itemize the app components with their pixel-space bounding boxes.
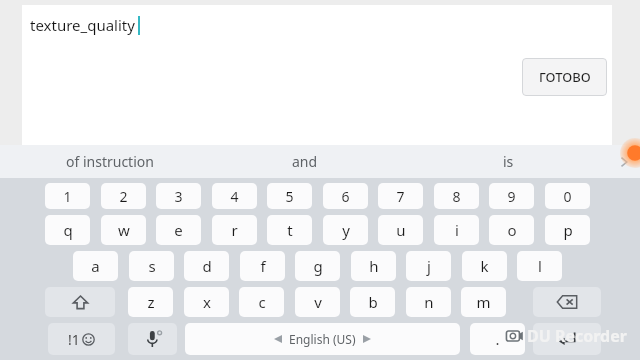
staticText: w (118, 220, 130, 240)
button[interactable]: c (239, 287, 284, 317)
button[interactable]: 1 (45, 183, 90, 209)
button[interactable]: Symbols (48, 323, 115, 355)
button[interactable]: j (406, 251, 451, 281)
staticText: 1 (63, 187, 72, 206)
button[interactable]: 7 (378, 183, 423, 209)
button[interactable]: r (212, 215, 257, 245)
button[interactable]: o (489, 215, 534, 245)
staticText: of instruction (66, 152, 154, 171)
staticText: r (231, 220, 238, 240)
staticText: 7 (396, 187, 405, 206)
staticText: v (314, 292, 322, 312)
button[interactable]: y (323, 215, 368, 245)
staticText: n (424, 292, 434, 312)
button[interactable]: is (418, 145, 598, 178)
staticText: p (563, 220, 573, 240)
staticText: 8 (452, 187, 461, 206)
staticText: ГОТОВО (539, 68, 591, 86)
staticText: q (63, 220, 73, 240)
button[interactable]: n (406, 287, 451, 317)
button[interactable]: Shift (45, 287, 115, 317)
button[interactable]: . (470, 323, 525, 355)
button[interactable]: 2 (101, 183, 146, 209)
button[interactable]: of instruction (20, 145, 200, 178)
button[interactable]: z (128, 287, 173, 317)
staticText: English (US) (289, 331, 356, 347)
staticText: x (203, 292, 211, 312)
staticText: a (91, 256, 100, 276)
button[interactable]: x (184, 287, 229, 317)
staticText: k (480, 256, 489, 276)
button[interactable]: q (45, 215, 90, 245)
staticText: . (495, 329, 500, 349)
staticText: d (202, 256, 212, 276)
button[interactable]: texture_quality (22, 5, 612, 145)
staticText: e (174, 220, 183, 240)
button[interactable]: ГОТОВО (522, 58, 607, 96)
button[interactable]: 9 (489, 183, 534, 209)
staticText: m (476, 292, 491, 312)
button[interactable]: k (462, 251, 507, 281)
button[interactable]: m (461, 287, 506, 317)
staticText: 0 (563, 187, 572, 206)
button[interactable]: 5 (267, 183, 312, 209)
staticText: 5 (285, 187, 294, 206)
button[interactable]: 0 (545, 183, 590, 209)
button[interactable]: i (434, 215, 479, 245)
staticText: texture_quality (30, 15, 135, 35)
button[interactable]: f (240, 251, 285, 281)
button[interactable]: u (378, 215, 423, 245)
button[interactable]: p (545, 215, 590, 245)
staticText: and (292, 152, 318, 171)
staticText: is (503, 152, 514, 171)
staticText: t (287, 220, 293, 240)
button[interactable]: Voice input (128, 323, 177, 355)
staticText: c (258, 292, 266, 312)
staticText: b (368, 292, 378, 312)
button[interactable]: 8 (434, 183, 479, 209)
button[interactable]: Backspace (533, 287, 601, 317)
button[interactable]: and (215, 145, 395, 178)
staticText: 3 (174, 187, 183, 206)
staticText: DU Recorder (527, 325, 627, 347)
staticText: o (507, 220, 517, 240)
button[interactable]: h (351, 251, 396, 281)
button[interactable]: s (129, 251, 174, 281)
button[interactable]: a (73, 251, 118, 281)
staticText: 4 (230, 187, 239, 206)
button[interactable]: v (295, 287, 340, 317)
button[interactable]: t (267, 215, 312, 245)
button[interactable]: b (350, 287, 395, 317)
staticText: l (538, 256, 542, 276)
staticText: 6 (341, 187, 350, 206)
staticText: h (369, 256, 379, 276)
button[interactable]: 4 (212, 183, 257, 209)
button[interactable]: d (184, 251, 229, 281)
button[interactable]: g (295, 251, 340, 281)
button[interactable]: More suggestions (608, 146, 640, 178)
staticText: i (455, 220, 459, 240)
button[interactable]: Enter (533, 323, 601, 355)
button[interactable]: Recorder (620, 138, 640, 168)
button[interactable]: 3 (156, 183, 201, 209)
staticText: g (313, 256, 323, 276)
staticText: 2 (119, 187, 128, 206)
button[interactable]: l (517, 251, 562, 281)
staticText: 9 (507, 187, 516, 206)
staticText: u (396, 220, 406, 240)
staticText: f (260, 256, 266, 276)
staticText: j (427, 256, 431, 276)
button[interactable]: w (101, 215, 146, 245)
button[interactable]: e (156, 215, 201, 245)
staticText: y (342, 220, 350, 240)
staticText: z (147, 292, 155, 312)
button[interactable]: English (US) (185, 323, 460, 355)
button[interactable]: 6 (323, 183, 368, 209)
staticText: s (148, 256, 156, 276)
staticText: !1 (68, 330, 80, 349)
